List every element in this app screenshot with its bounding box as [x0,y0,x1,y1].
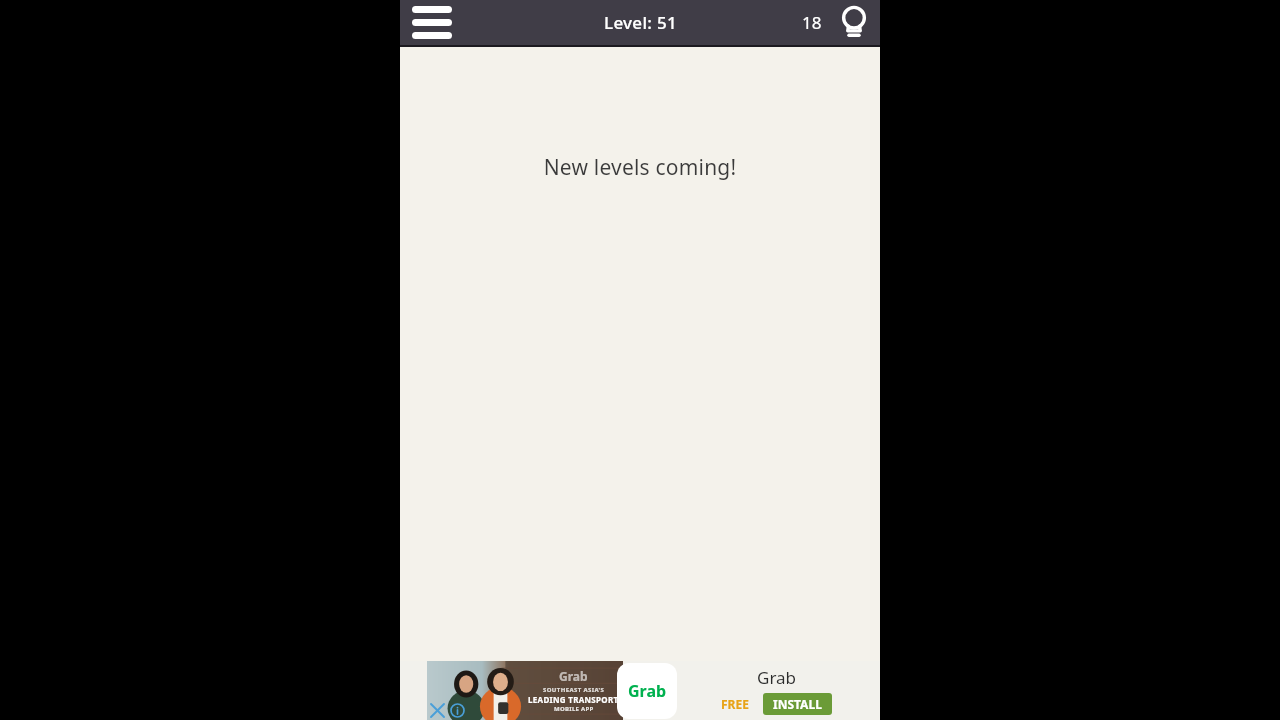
button[interactable]: INSTALL [763,693,832,715]
staticText: 18 [802,11,822,34]
staticText: Grab [559,668,588,684]
button[interactable]: Grab [400,661,880,720]
button[interactable]: Ad information [447,700,467,720]
staticText: Level: 51 [604,11,677,34]
staticText: SOUTHEAST ASIA'S [543,686,605,694]
staticText: FREE [721,696,749,712]
button[interactable]: Menu [406,0,458,45]
staticText: New levels coming! [400,153,880,182]
button[interactable]: Hint [832,0,876,45]
staticText: Grab [757,666,797,689]
staticText: Grab [628,680,667,702]
staticText: MOBILE APP [554,705,594,713]
staticText: LEADING TRANSPORT [528,694,619,705]
button[interactable]: Close ad [427,700,447,720]
staticText: INSTALL [773,696,822,712]
